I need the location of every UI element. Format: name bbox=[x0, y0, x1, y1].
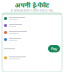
button[interactable] bbox=[2, 15, 62, 22]
button[interactable] bbox=[2, 29, 62, 36]
staticText: Pay bbox=[51, 46, 57, 51]
button[interactable]: Pay bbox=[48, 45, 60, 52]
staticText: अपनी ई-पेमेंट bbox=[14, 1, 49, 9]
staticText: transaction reference no. bbox=[10, 7, 53, 13]
button[interactable] bbox=[2, 36, 62, 43]
button[interactable] bbox=[2, 22, 62, 29]
button[interactable] bbox=[2, 54, 62, 61]
